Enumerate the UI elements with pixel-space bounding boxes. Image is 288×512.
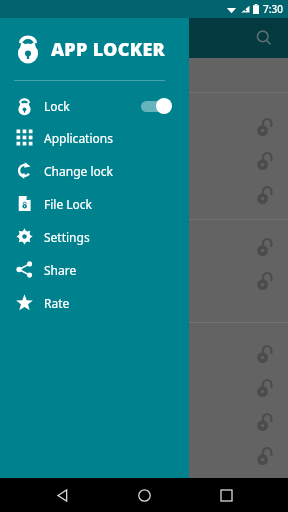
other: Unlocked [256, 344, 276, 364]
staticText: Applications [44, 130, 113, 146]
staticText: Change lock [44, 163, 113, 179]
button[interactable]: Unlocked [0, 405, 288, 439]
button[interactable]: Unlocked [0, 337, 288, 371]
button[interactable]: Unlocked [0, 371, 288, 405]
button[interactable]: Unlocked [0, 178, 288, 212]
other: Unlocked [256, 237, 276, 257]
button[interactable]: Back [42, 478, 82, 512]
button[interactable]: Share [0, 253, 189, 286]
staticText: 7:30 [263, 2, 283, 16]
button[interactable]: Home [124, 478, 164, 512]
other: Unlocked [256, 151, 276, 171]
button[interactable]: Unlocked [0, 110, 288, 144]
other: Unlocked [256, 378, 276, 398]
button[interactable]: File Lock [0, 187, 189, 220]
button[interactable]: Change lock [0, 154, 189, 187]
button[interactable]: Unlocked [0, 439, 288, 473]
staticText: APP LOCKER [51, 37, 166, 62]
staticText: Lock [44, 98, 70, 114]
button[interactable]: Recent apps [206, 478, 246, 512]
other: Unlocked [256, 271, 276, 291]
other: Unlocked [256, 446, 276, 466]
other: Unlocked [256, 117, 276, 137]
button[interactable]: Unlocked [0, 144, 288, 178]
staticText: Settings [44, 229, 90, 245]
other: Unlocked [256, 412, 276, 432]
button[interactable]: Search [248, 22, 280, 54]
button[interactable]: Unlocked [0, 264, 288, 298]
button[interactable]: Settings [0, 220, 189, 253]
button[interactable]: Applications [0, 121, 189, 154]
button[interactable]: Rate [0, 286, 189, 319]
other: Unlocked [256, 185, 276, 205]
button[interactable]: Unlocked [0, 230, 288, 264]
staticText: File Lock [44, 196, 93, 212]
staticText: Share [44, 262, 77, 278]
button[interactable]: Lock toggle [139, 97, 175, 115]
button[interactable]: Lock [0, 91, 189, 121]
staticText: Rate [44, 295, 70, 311]
